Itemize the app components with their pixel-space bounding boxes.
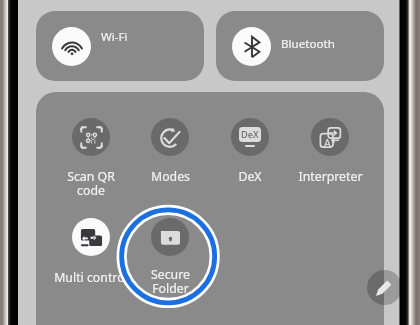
button[interactable]: DeX	[210, 118, 290, 185]
button[interactable]: Bluetooth	[216, 11, 384, 81]
button[interactable]: A	[290, 118, 370, 185]
button[interactable]: Secure Folder	[130, 218, 210, 297]
staticText: Scan QR code	[67, 168, 115, 199]
button[interactable]: Modes	[130, 118, 210, 185]
button[interactable]: Multi control	[36, 218, 156, 286]
staticText: Multi control	[54, 269, 128, 286]
button[interactable]: Scan QR code	[51, 118, 131, 199]
staticText: DeX	[241, 128, 259, 141]
staticText: Wi-Fi	[101, 29, 128, 45]
staticText: Interpreter	[298, 168, 363, 185]
staticText: A	[324, 136, 331, 150]
button[interactable]: Wi-Fi	[36, 11, 204, 81]
staticText: Bluetooth	[281, 36, 335, 52]
button[interactable]: Edit quick settings	[367, 270, 402, 305]
staticText: Modes	[151, 168, 190, 185]
staticText: Secure Folder	[151, 266, 190, 297]
staticText: DeX	[238, 168, 262, 185]
